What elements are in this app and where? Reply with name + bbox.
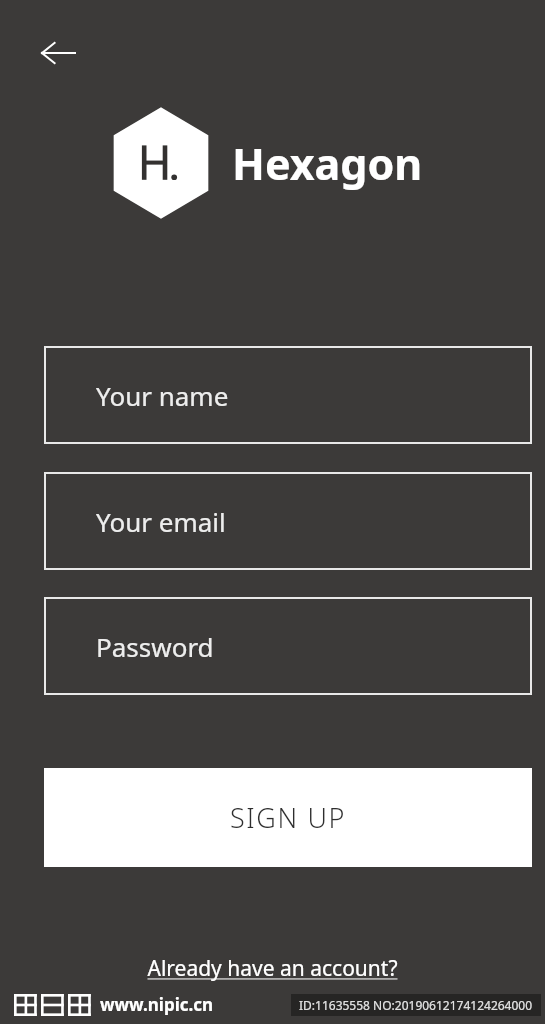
button[interactable]: Already have an account?	[0, 946, 545, 990]
button[interactable]: Back	[30, 28, 86, 78]
staticText: ID:11635558 NO:20190612174124264000	[299, 997, 533, 1013]
button[interactable]: Your email	[44, 472, 532, 570]
staticText: Already have an account?	[147, 954, 398, 983]
staticText: SIGN UP	[230, 799, 346, 836]
staticText: Hexagon	[232, 134, 423, 193]
button[interactable]: Your name	[44, 346, 532, 444]
button[interactable]: Password	[44, 597, 532, 695]
staticText: Password	[96, 629, 214, 664]
staticText: Your email	[96, 504, 226, 539]
button[interactable]: SIGN UP	[44, 768, 532, 867]
staticText: Your name	[96, 378, 229, 413]
staticText: www.nipic.cn	[100, 993, 214, 1016]
